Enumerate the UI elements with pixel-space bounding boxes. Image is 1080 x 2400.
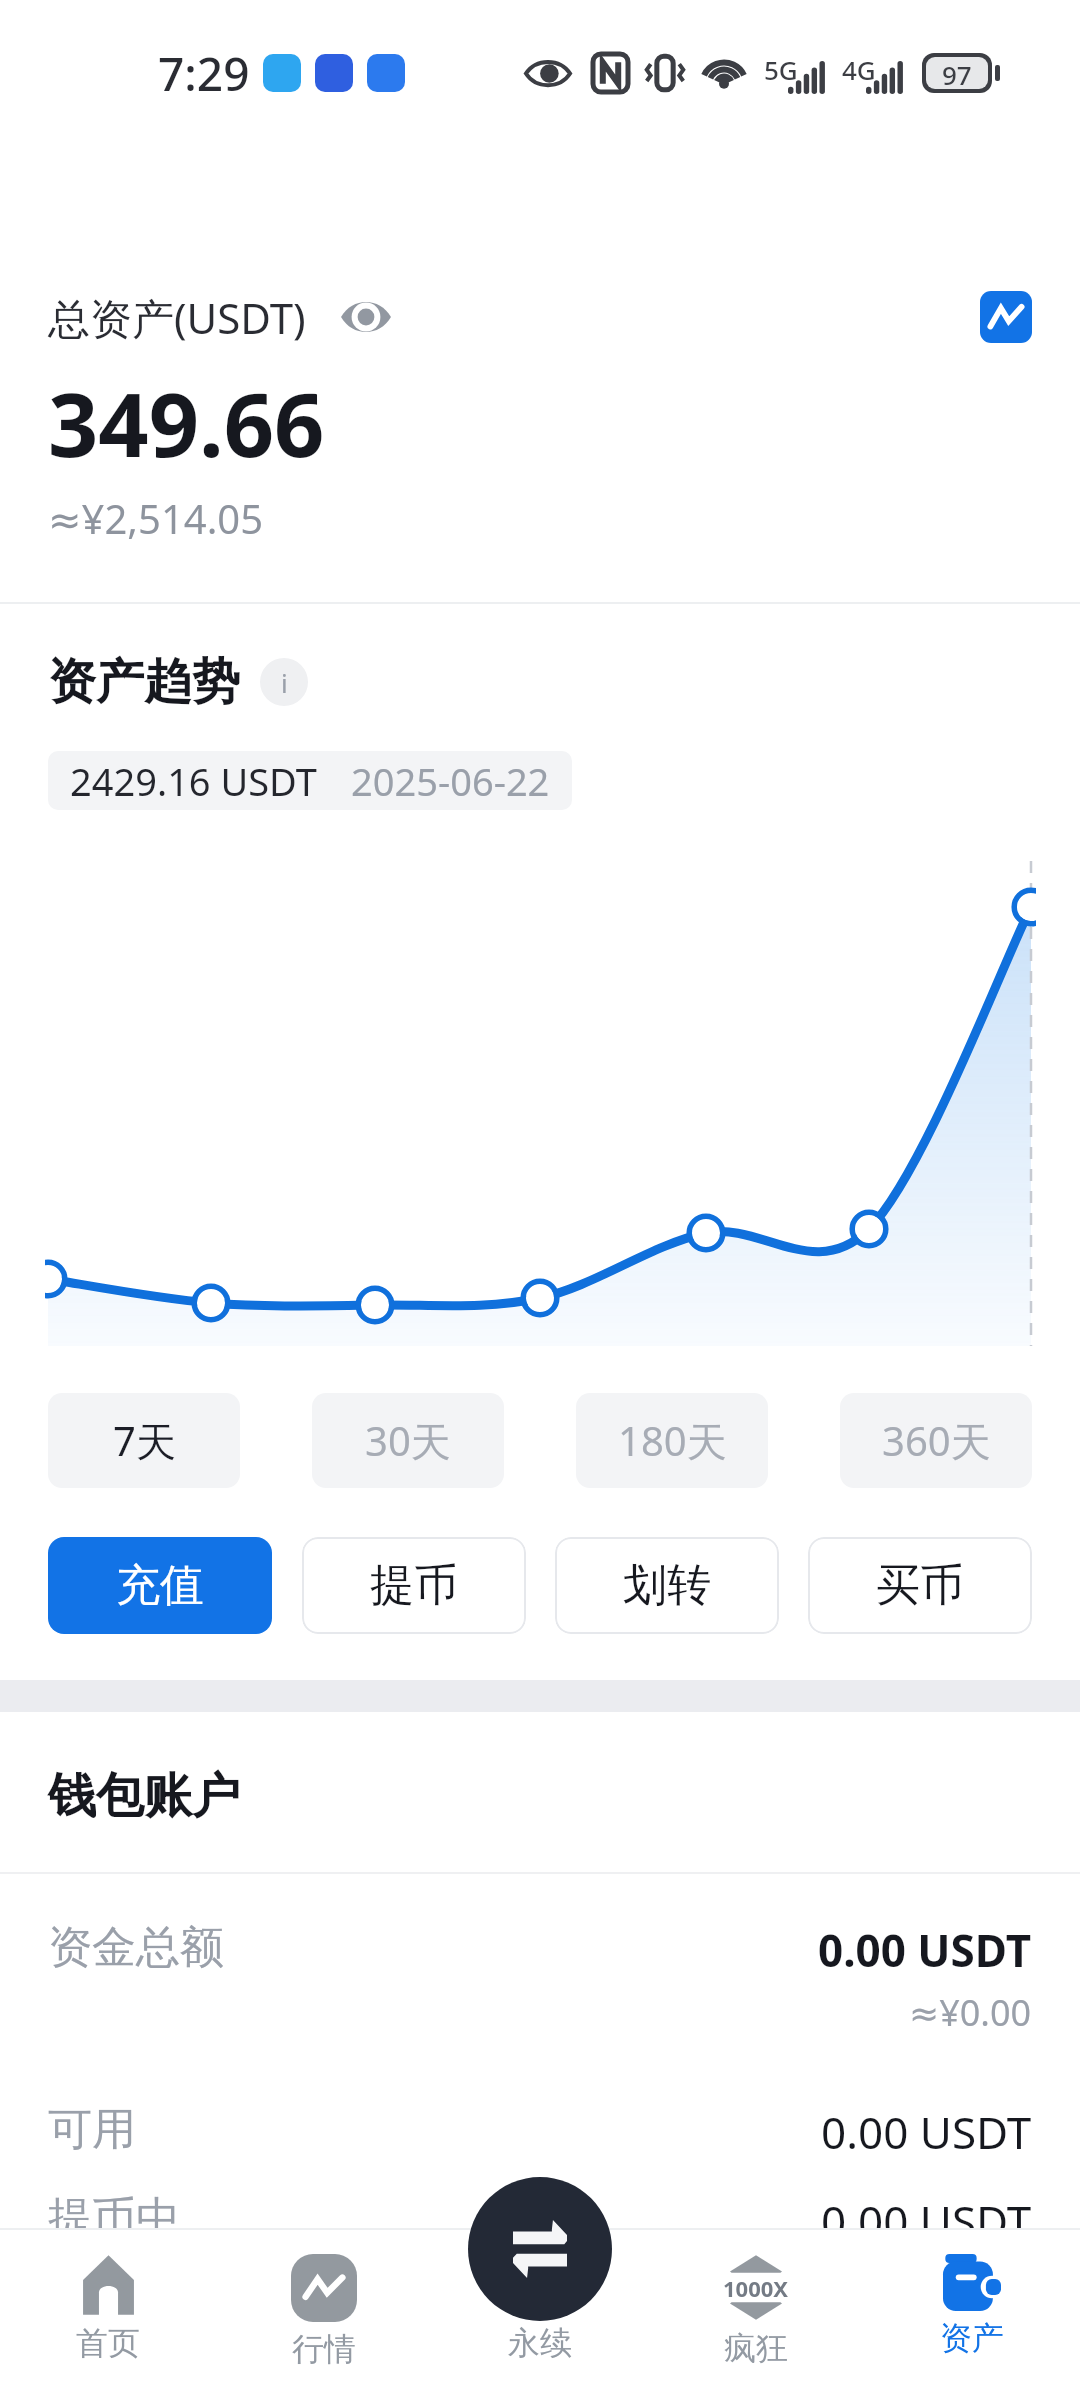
staticText: 提币 — [370, 1558, 458, 1613]
staticText: 349.66 — [48, 363, 325, 483]
button[interactable]: 360天 — [840, 1393, 1032, 1488]
button[interactable]: 资金总额 — [48, 1920, 1032, 2037]
button[interactable]: 30天 — [312, 1393, 504, 1488]
staticText: 总资产(USDT) — [48, 289, 306, 346]
staticText: 97 — [942, 57, 972, 89]
staticText: 0.00 USDT — [821, 2191, 1032, 2251]
staticText: 180天 — [618, 1413, 727, 1468]
staticText: 资产 — [940, 2318, 1004, 2358]
staticText: ≈¥0.00 — [909, 1988, 1032, 2037]
button[interactable]: 买币 — [808, 1537, 1032, 1634]
button[interactable]: 永续 — [432, 2228, 648, 2400]
button[interactable]: 行情 — [216, 2228, 432, 2400]
staticText: 0.00 USDT — [821, 2102, 1032, 2162]
staticText: 划转 — [623, 1558, 711, 1613]
staticText: 5G — [764, 52, 798, 87]
button[interactable]: Info — [260, 658, 308, 706]
staticText: 资产趋势 — [48, 652, 240, 712]
staticText: 疯狂 — [724, 2328, 788, 2368]
staticText: 钱包账户 — [48, 1766, 240, 1826]
staticText: 首页 — [76, 2323, 140, 2363]
button[interactable]: 资产 — [864, 2228, 1080, 2400]
staticText: 资金总额 — [48, 1920, 224, 1975]
button[interactable]: Perpetual trading — [468, 2177, 612, 2321]
staticText: 买币 — [876, 1558, 964, 1613]
button[interactable]: 提币 — [302, 1537, 526, 1634]
staticText: 7天 — [113, 1413, 176, 1468]
staticText: 充值 — [116, 1558, 204, 1613]
staticText: 可用 — [48, 2102, 136, 2157]
button[interactable]: 可用 — [48, 2102, 1032, 2162]
staticText: 2025-06-22 — [351, 755, 550, 807]
button[interactable]: 首页 — [0, 2228, 216, 2400]
staticText: 7:29 — [158, 42, 250, 105]
staticText: 行情 — [292, 2329, 356, 2369]
button[interactable]: 划转 — [555, 1537, 779, 1634]
button[interactable]: 提币中 — [48, 2191, 1032, 2251]
staticText: i — [281, 665, 288, 700]
staticText: 永续 — [508, 2323, 572, 2363]
button[interactable]: 7天 — [48, 1393, 240, 1488]
staticText: 1000X — [723, 2273, 789, 2303]
staticText: 0.00 USDT — [818, 1920, 1032, 1980]
button[interactable]: 充值 — [48, 1537, 272, 1634]
staticText: 360天 — [882, 1413, 991, 1468]
staticText: ≈¥2,514.05 — [48, 491, 264, 545]
button[interactable]: Asset chart — [980, 291, 1032, 343]
staticText: 提币中 — [48, 2191, 180, 2246]
button[interactable]: Toggle balance visibility — [340, 297, 392, 337]
staticText: 4G — [842, 52, 876, 87]
staticText: 2429.16 USDT — [70, 755, 317, 807]
button[interactable]: 180天 — [576, 1393, 768, 1488]
button[interactable]: 1000X — [648, 2228, 864, 2400]
staticText: 30天 — [365, 1413, 451, 1468]
